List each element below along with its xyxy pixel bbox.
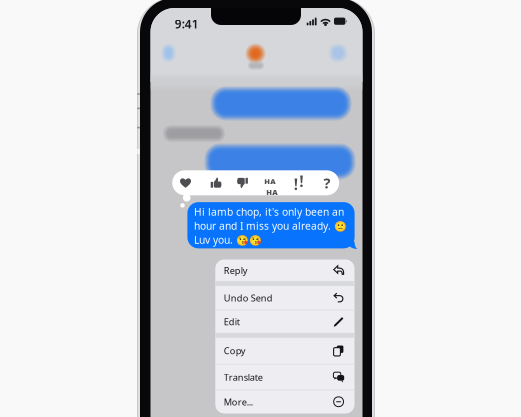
- staticText: Edit: [224, 315, 240, 328]
- button[interactable]: Thumbs down: [229, 170, 255, 195]
- staticText: More...: [224, 396, 253, 408]
- button[interactable]: Copy: [215, 338, 354, 364]
- staticText: 9:41: [175, 16, 199, 32]
- staticText: hour and I miss you already. 🙁: [194, 219, 347, 233]
- button[interactable]: Haha: [258, 170, 284, 195]
- button[interactable]: Undo Send: [215, 286, 354, 310]
- button[interactable]: Love: [172, 170, 198, 195]
- button[interactable]: More...: [215, 390, 354, 413]
- button[interactable]: Question mark: [314, 170, 340, 195]
- staticText: Translate: [224, 371, 263, 383]
- staticText: HA: [264, 176, 275, 186]
- staticText: HA: [266, 187, 277, 197]
- staticText: Hi lamb chop, it's only been an: [194, 205, 344, 219]
- button[interactable]: Translate: [215, 364, 354, 389]
- staticText: Copy: [224, 344, 246, 357]
- button[interactable]: Reply: [215, 260, 354, 281]
- staticText: ?: [323, 173, 330, 193]
- staticText: Luv you. 😘😘: [194, 233, 262, 247]
- staticText: Undo Send: [224, 292, 273, 304]
- staticText: Reply: [224, 264, 248, 277]
- button[interactable]: Exclamation: [287, 170, 313, 195]
- button[interactable]: Thumbs up: [203, 170, 229, 195]
- button[interactable]: Edit: [215, 310, 354, 333]
